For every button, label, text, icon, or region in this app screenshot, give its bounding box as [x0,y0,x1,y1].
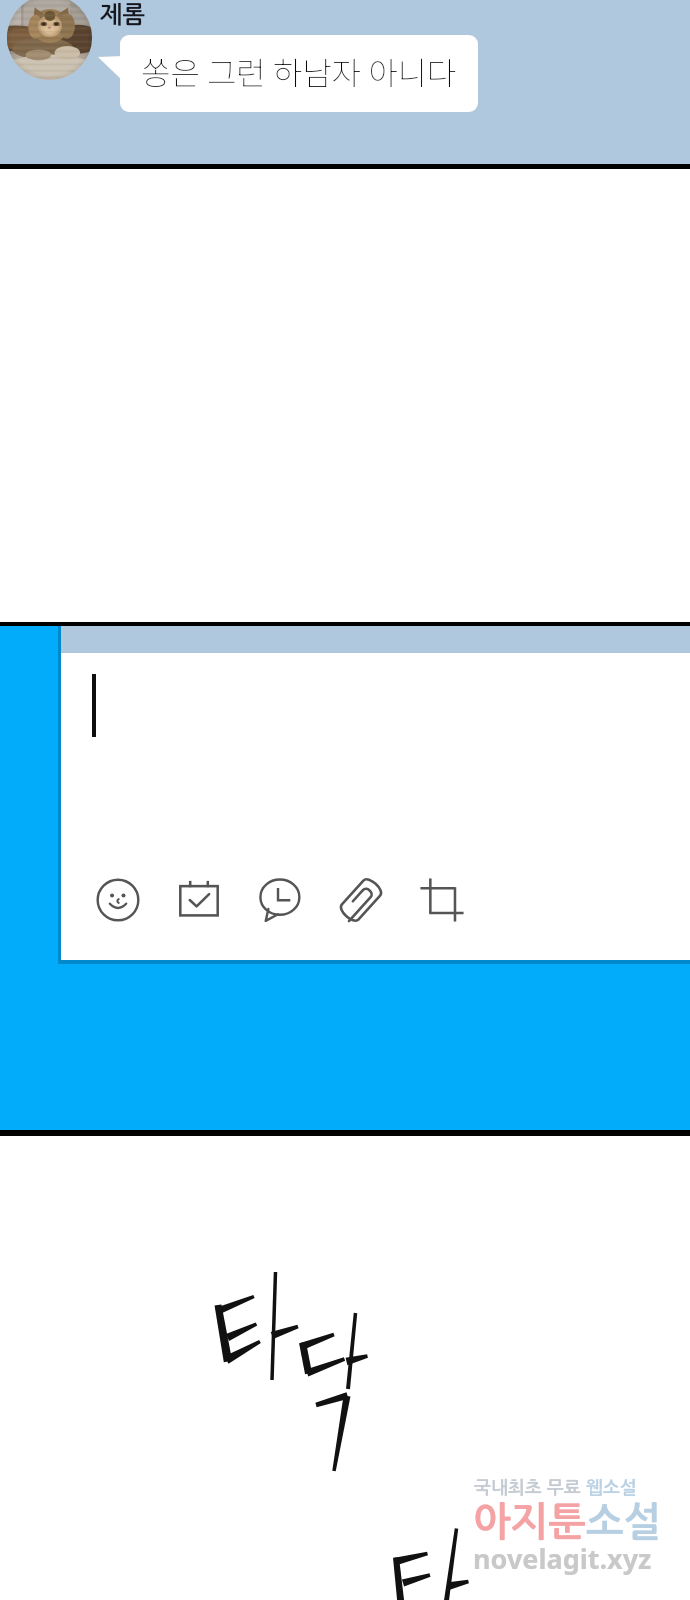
button[interactable]: Reminder [258,878,302,922]
staticText: 쏭은 그런 하남자 아니다 [141,48,457,94]
staticText: 아지툰 [473,1502,586,1542]
button[interactable]: Schedule [177,878,221,922]
button[interactable]: Attach [339,878,383,922]
staticText: novelagit.xyz [473,1540,652,1577]
button[interactable]: Emoji [96,878,140,922]
staticText: 소설 [586,1502,662,1542]
staticText: 국내최초 무료 [474,1479,586,1497]
button[interactable]: Crop [420,878,464,922]
staticText: 제롬 [100,3,146,27]
staticText: 웹소설 [586,1479,637,1497]
